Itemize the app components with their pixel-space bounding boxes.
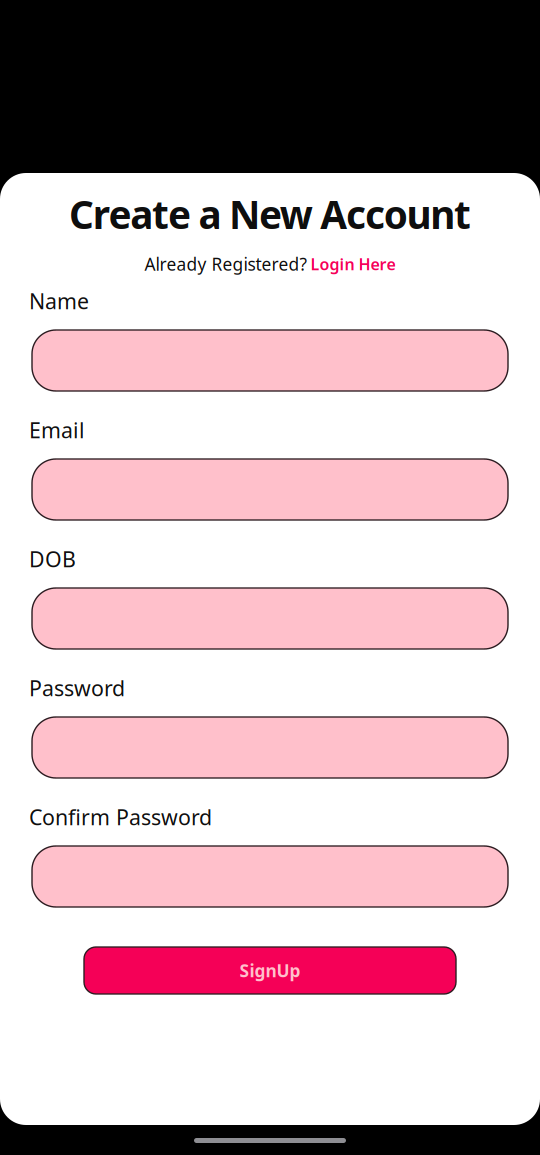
staticText: Confirm Password <box>29 803 212 831</box>
staticText: Login Here <box>310 253 395 275</box>
staticText: Already Registered? <box>144 252 307 275</box>
button[interactable]: Name text field <box>32 330 508 391</box>
staticText: SignUp <box>239 959 300 982</box>
staticText: Password <box>29 674 125 702</box>
button[interactable]: Confirm Password text field <box>32 846 508 907</box>
staticText: DOB <box>29 545 76 573</box>
staticText: Create a New Account <box>69 188 471 240</box>
button[interactable]: Email text field <box>32 459 508 520</box>
button[interactable]: Login Here <box>310 253 395 275</box>
button[interactable]: SignUp <box>84 947 456 994</box>
staticText: Email <box>29 416 85 444</box>
button[interactable]: Password text field <box>32 717 508 778</box>
button[interactable]: DOB text field <box>32 588 508 649</box>
staticText: Name <box>29 287 89 315</box>
